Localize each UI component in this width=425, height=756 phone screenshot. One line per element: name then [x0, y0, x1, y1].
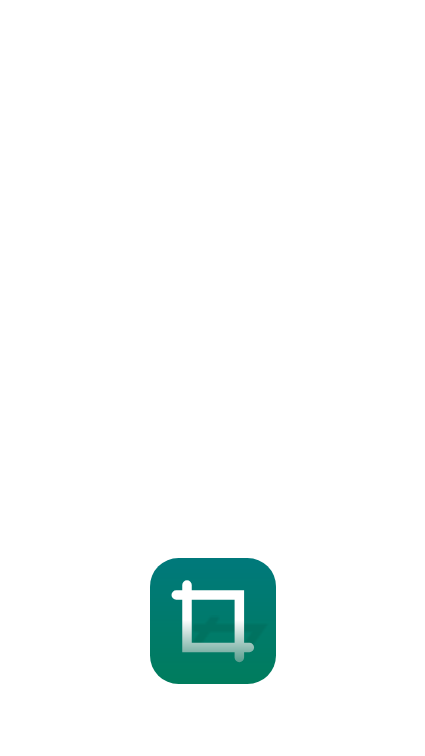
button[interactable]: Crop app icon: [150, 558, 276, 684]
